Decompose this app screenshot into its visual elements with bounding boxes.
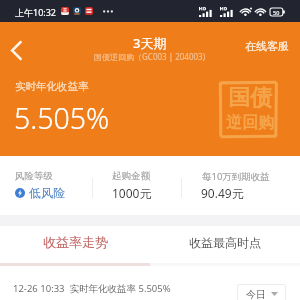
- staticText: 1000元: [112, 185, 152, 201]
- staticText: 50: [273, 9, 280, 16]
- staticText: 90.49元: [201, 185, 244, 201]
- staticText: 今日: [246, 288, 266, 300]
- staticText: 12-26 10:33 实时年化收益率 5.505%: [13, 282, 171, 295]
- button[interactable]: Back: [2, 35, 30, 65]
- staticText: 上午10:32: [15, 6, 57, 18]
- staticText: 起购金额: [112, 170, 150, 182]
- staticText: 收益率走势: [43, 234, 108, 250]
- staticText: 每10万到期收益: [202, 170, 270, 183]
- staticText: 在线客服: [245, 39, 289, 53]
- button[interactable]: 在线客服: [245, 39, 289, 53]
- staticText: 3天期: [133, 34, 167, 52]
- button[interactable]: 收益率走势: [0, 226, 150, 258]
- button[interactable]: 今日: [237, 284, 286, 300]
- staticText: 实时年化收益率: [15, 80, 89, 93]
- staticText: 逆回购: [226, 113, 274, 133]
- staticText: 国债逆回购（GC003 | 204003): [94, 51, 206, 62]
- staticText: 5.505%: [14, 99, 110, 138]
- button[interactable]: 收益最高时点: [150, 226, 300, 258]
- staticText: 收益最高时点: [189, 235, 261, 250]
- staticText: 风险等级: [15, 170, 53, 182]
- staticText: 低风险: [29, 185, 65, 200]
- staticText: 国债: [228, 84, 272, 112]
